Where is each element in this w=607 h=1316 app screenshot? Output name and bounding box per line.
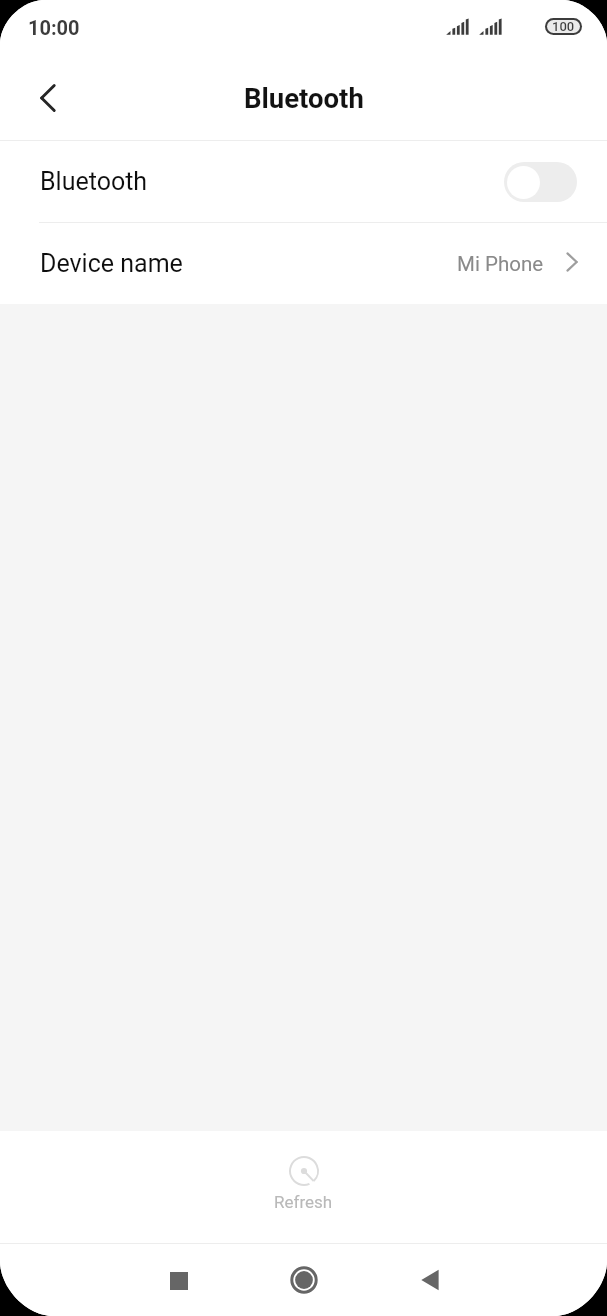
button[interactable]: Home — [268, 1244, 340, 1316]
staticText: Refresh — [274, 1192, 333, 1212]
button[interactable]: Back — [21, 73, 71, 123]
button[interactable]: Device name — [0, 223, 607, 304]
staticText: Bluetooth — [40, 167, 148, 196]
button[interactable]: Bluetooth — [0, 141, 607, 222]
staticText: Mi Phone — [457, 252, 544, 276]
button[interactable]: Bluetooth switch — [504, 162, 577, 202]
button[interactable]: Recent apps — [142, 1244, 214, 1316]
button[interactable]: Back — [394, 1244, 466, 1316]
button[interactable]: Refresh — [0, 1131, 607, 1243]
staticText: Bluetooth — [244, 82, 364, 114]
staticText: Device name — [40, 249, 183, 278]
staticText: 100 — [552, 19, 575, 34]
staticText: 10:00 — [28, 16, 80, 39]
